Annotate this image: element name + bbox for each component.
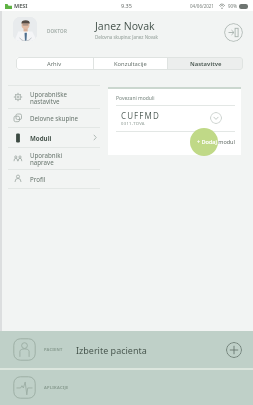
staticText: 90% <box>228 3 237 9</box>
button[interactable]: Profil <box>8 170 100 188</box>
staticText: Uporabniki naprave <box>30 151 63 166</box>
staticText: Arhiv <box>47 60 62 68</box>
button[interactable]: Moduli <box>8 128 100 147</box>
staticText: DOKTOR <box>47 28 67 34</box>
button[interactable]: Uporabniške nastavitve <box>8 86 100 108</box>
button[interactable]: Odjava <box>224 23 243 42</box>
staticText: Delovna skupina: Janez Novak <box>95 34 158 40</box>
button[interactable]: APLIKACIJE <box>0 370 253 405</box>
staticText: APLIKACIJE <box>44 385 69 390</box>
staticText: + Dodaj modul <box>197 138 218 145</box>
staticText: 0311-TDVA <box>121 121 145 127</box>
staticText: CUFFMD <box>121 110 160 121</box>
staticText: PACIENT <box>44 347 63 352</box>
staticText: Nastavitve <box>190 60 222 68</box>
button[interactable]: PACIENT <box>0 331 253 368</box>
staticText: Konzultacije <box>114 60 147 68</box>
staticText: 04/06/2021 <box>190 3 214 9</box>
staticText: Povezani moduli <box>116 95 155 102</box>
button[interactable]: Nastavitve <box>168 57 243 70</box>
button[interactable]: Konzultacije <box>94 57 167 70</box>
button[interactable]: Dodaj modul <box>190 128 218 156</box>
button[interactable]: Uporabniki naprave <box>8 148 100 169</box>
staticText: Profil <box>30 175 46 183</box>
button[interactable]: Delovne skupine <box>8 109 100 127</box>
staticText: Moduli <box>30 134 52 142</box>
staticText: 9.35 <box>121 2 132 9</box>
staticText: Izberite pacienta <box>76 344 147 356</box>
button[interactable]: Profilna slika <box>13 17 37 41</box>
staticText: + Dodaj modul <box>197 138 235 145</box>
staticText: Delovne skupine <box>30 114 79 122</box>
button[interactable]: Dodaj pacienta <box>226 342 242 358</box>
staticText: Janez Novak <box>95 19 155 33</box>
staticText: MESI <box>14 2 28 9</box>
button[interactable]: Arhiv <box>16 57 93 70</box>
staticText: Uporabniške nastavitve <box>30 90 67 105</box>
button[interactable]: Razširi <box>210 112 222 124</box>
